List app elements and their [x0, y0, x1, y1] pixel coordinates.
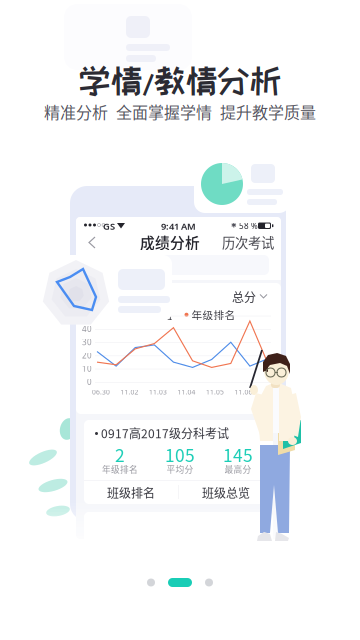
staticText: 精准分析 全面掌握学情 提升教学质量: [44, 100, 316, 123]
staticText: 分的差值: [128, 307, 172, 322]
staticText: 最高分: [224, 463, 251, 475]
staticText: 11.04: [177, 388, 195, 396]
button[interactable]: 班级总览: [179, 481, 273, 504]
staticText: 40: [82, 324, 92, 334]
staticText: 班级排名: [107, 484, 155, 501]
button[interactable]: 总分: [228, 285, 272, 308]
staticText: 2: [115, 442, 125, 467]
staticText: 学情/教情分析: [78, 63, 281, 98]
staticText: 年级排名: [191, 307, 235, 322]
button[interactable]: Page 3: [205, 578, 213, 586]
staticText: 20: [82, 350, 92, 361]
staticText: GS: [103, 220, 115, 232]
button[interactable]: 历次考试: [222, 232, 274, 252]
staticText: 0917高2017级分科考试: [101, 424, 229, 442]
staticText: 11.06: [234, 388, 252, 396]
staticText: 06.30: [92, 388, 110, 396]
staticText: 年级排名: [102, 463, 138, 475]
staticText: 58 %: [239, 220, 258, 231]
staticText: 11.05: [206, 388, 224, 396]
staticText: 105: [165, 442, 195, 467]
staticText: 30: [82, 337, 92, 347]
staticText: ✱: [231, 221, 237, 229]
staticText: 11.02: [120, 388, 138, 396]
staticText: 成绩分析: [140, 231, 200, 253]
button[interactable]: 班级排名: [84, 481, 178, 504]
button[interactable]: Page 2, current: [168, 578, 192, 587]
staticText: 平均分: [166, 463, 193, 475]
staticText: 班级总览: [202, 484, 250, 501]
staticText: 总分: [232, 288, 256, 305]
staticText: 0: [87, 377, 92, 387]
button[interactable]: Back: [82, 233, 103, 253]
staticText: 10: [82, 363, 92, 374]
button[interactable]: Page 1: [147, 578, 155, 586]
staticText: 9:41 AM: [161, 220, 196, 232]
staticText: 历次考试: [222, 232, 274, 252]
staticText: 145: [223, 442, 253, 467]
staticText: 11.03: [149, 388, 167, 396]
